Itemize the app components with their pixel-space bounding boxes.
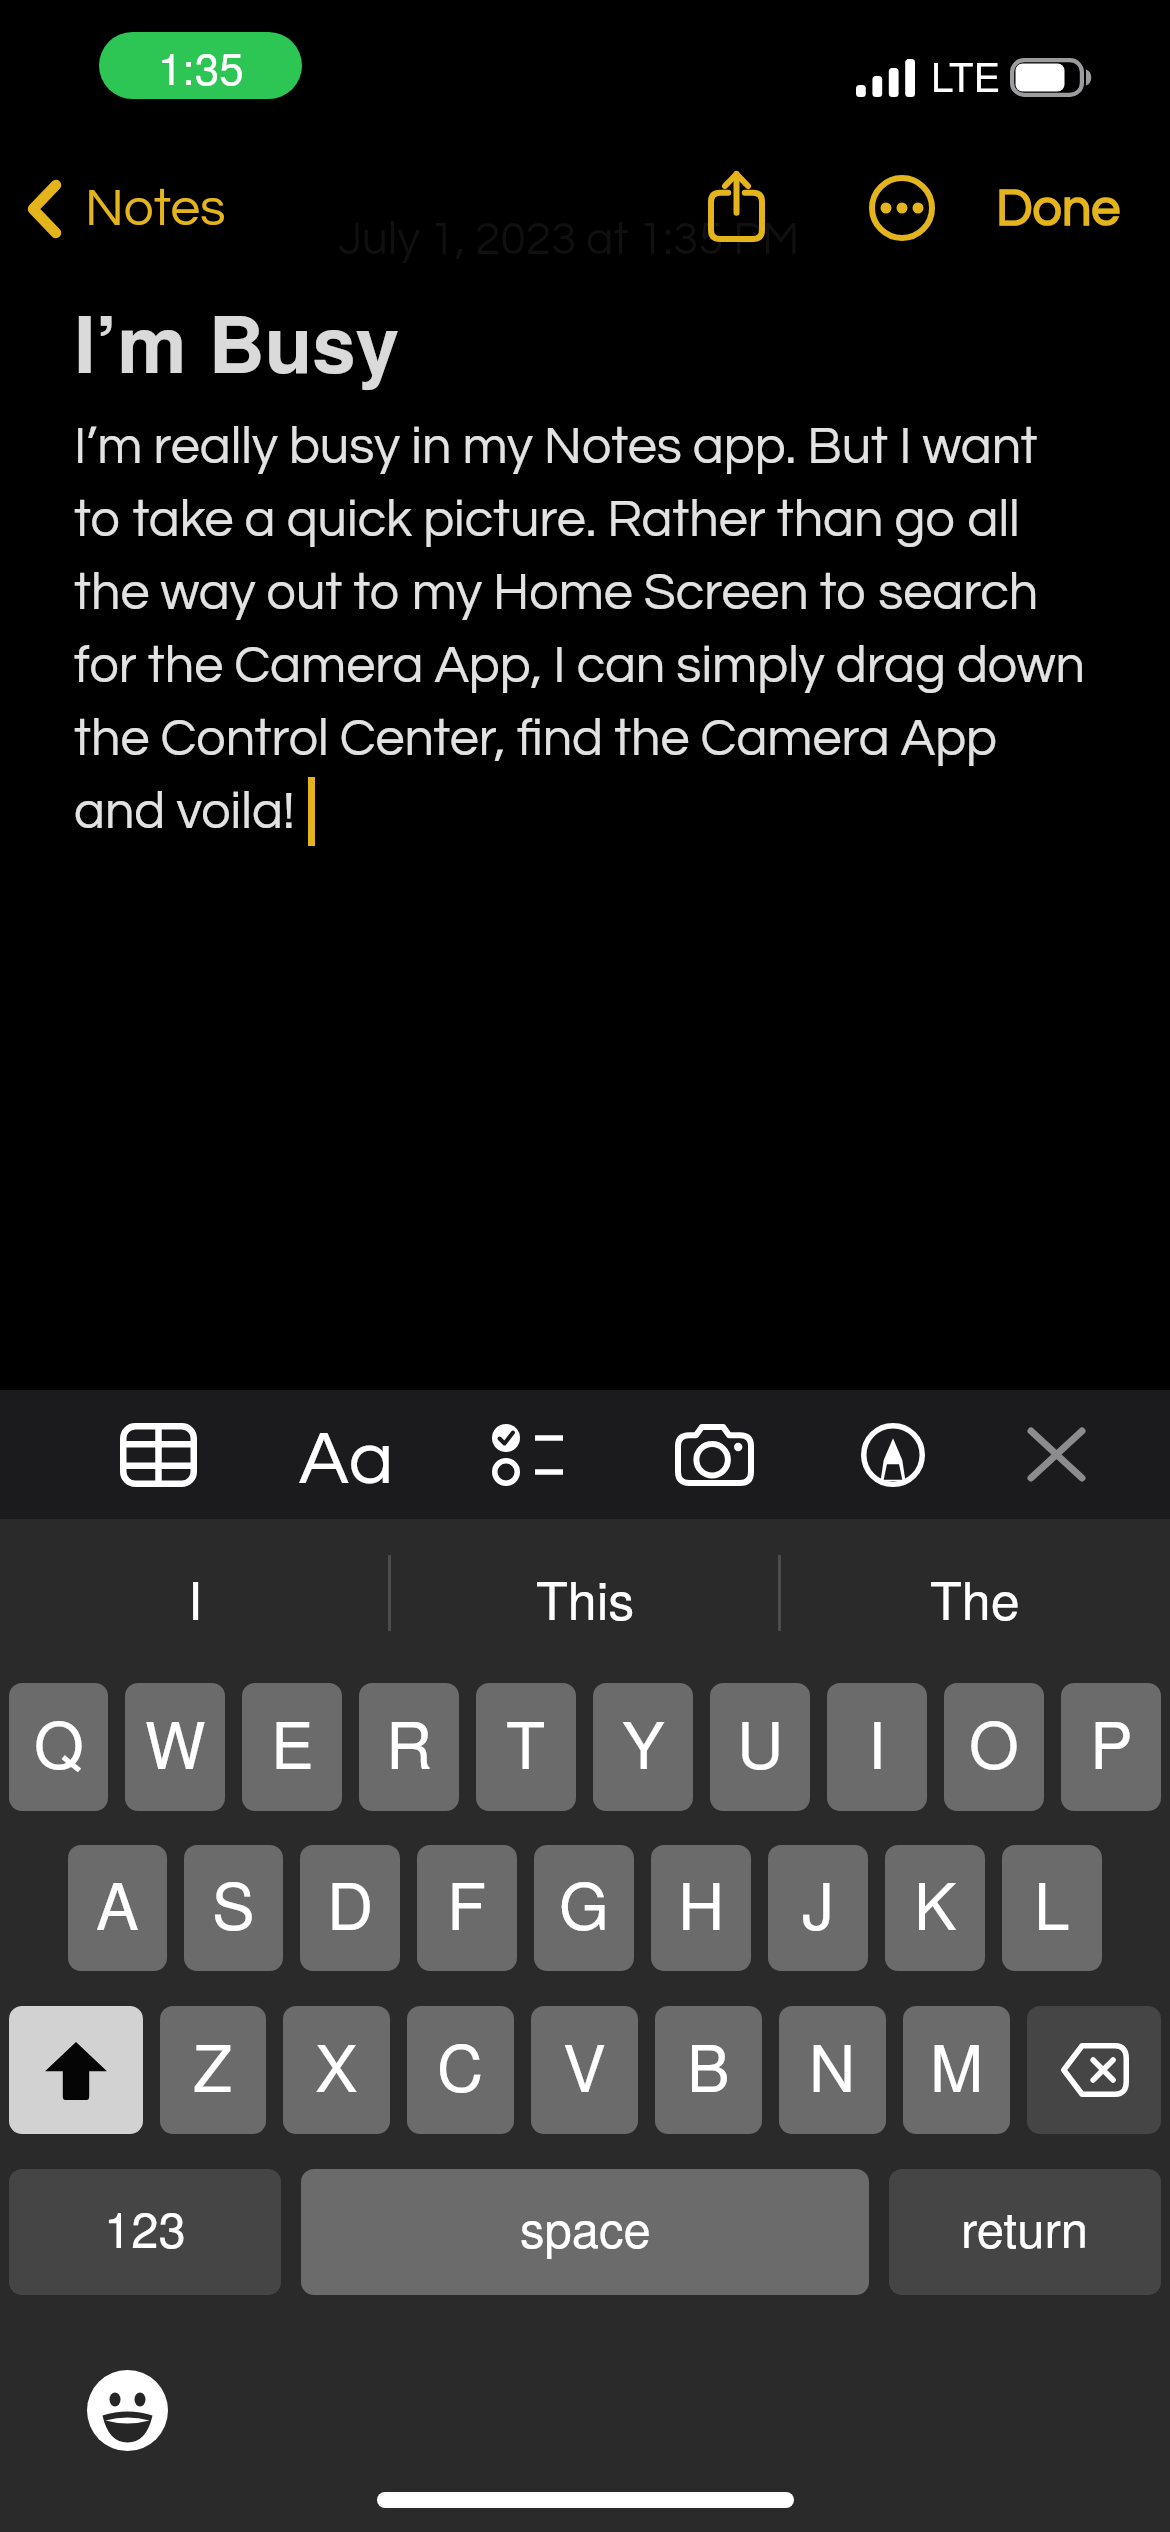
button[interactable]: J [768, 1845, 868, 1971]
button[interactable]: Done [984, 159, 1133, 259]
staticText: W [145, 1696, 206, 1788]
staticText: space [520, 2192, 651, 2262]
button[interactable]: Shift [9, 2006, 143, 2134]
staticText: I [868, 1696, 886, 1788]
button[interactable]: W [125, 1683, 225, 1811]
button[interactable]: I [827, 1683, 927, 1811]
button[interactable]: H [651, 1845, 751, 1971]
button[interactable]: F [417, 1845, 517, 1971]
button[interactable]: The [780, 1515, 1170, 1679]
button[interactable]: O [944, 1683, 1044, 1811]
button[interactable]: Q [9, 1683, 108, 1811]
staticText: M [930, 2019, 984, 2111]
staticText: The [930, 1560, 1020, 1634]
button[interactable]: Z [160, 2006, 266, 2134]
button[interactable]: E [242, 1683, 342, 1811]
button[interactable]: M [903, 2006, 1010, 2134]
staticText: D [327, 1857, 374, 1949]
staticText: 123 [104, 2192, 186, 2262]
button[interactable]: space [301, 2169, 869, 2295]
staticText: I’m really busy in my Notes app. But I w… [74, 405, 1085, 843]
staticText: return [961, 2192, 1089, 2262]
staticText: Aa [299, 1421, 394, 1498]
button[interactable]: P [1061, 1683, 1161, 1811]
button[interactable]: Share [686, 155, 786, 255]
staticText: LTE [931, 46, 1001, 103]
button[interactable]: return [889, 2169, 1161, 2295]
button[interactable]: V [531, 2006, 638, 2134]
staticText: T [506, 1696, 546, 1788]
button[interactable]: Y [593, 1683, 693, 1811]
button[interactable]: 123 [9, 2169, 281, 2295]
button[interactable]: Markup [836, 1390, 950, 1519]
staticText: X [315, 2019, 358, 2111]
button[interactable]: U [710, 1683, 810, 1811]
staticText: S [212, 1857, 255, 1949]
button[interactable]: This [390, 1515, 780, 1679]
button[interactable]: Emoji keyboard [77, 2360, 177, 2460]
staticText: R [386, 1696, 433, 1788]
staticText: G [559, 1857, 609, 1949]
button[interactable]: Backspace [1027, 2006, 1161, 2134]
staticText: A [96, 1857, 139, 1949]
button[interactable]: X [283, 2006, 390, 2134]
button[interactable]: More options [852, 158, 952, 258]
button[interactable]: T [476, 1683, 576, 1811]
button[interactable]: N [779, 2006, 886, 2134]
staticText: N [809, 2019, 856, 2111]
staticText: C [437, 2019, 484, 2111]
button[interactable]: R [359, 1683, 459, 1811]
staticText: 1:35 [158, 34, 244, 97]
button[interactable]: L [1002, 1845, 1102, 1971]
staticText: I [188, 1560, 203, 1634]
button[interactable]: I [0, 1515, 390, 1679]
staticText: P [1090, 1696, 1133, 1788]
button[interactable]: B [655, 2006, 762, 2134]
staticText: Notes [85, 182, 226, 237]
button[interactable]: Checklist [471, 1390, 585, 1519]
staticText: July 1, 2023 at 1:35 PM [338, 216, 800, 263]
staticText: Done [996, 182, 1121, 236]
button[interactable]: Notes [18, 169, 234, 249]
staticText: Z [193, 2019, 233, 2111]
staticText: F [447, 1857, 487, 1949]
button[interactable]: C [407, 2006, 514, 2134]
staticText: U [737, 1696, 784, 1788]
button[interactable]: Table [101, 1390, 215, 1519]
button[interactable]: Camera [657, 1390, 771, 1519]
staticText: Y [622, 1696, 665, 1788]
button[interactable]: D [300, 1845, 400, 1971]
button[interactable]: G [534, 1845, 634, 1971]
staticText: Q [34, 1696, 84, 1788]
staticText: I’m Busy [74, 285, 400, 397]
staticText: V [563, 2019, 606, 2111]
staticText: B [687, 2019, 730, 2111]
staticText: O [969, 1696, 1019, 1788]
button[interactable]: S [184, 1845, 283, 1971]
button[interactable]: Text format [289, 1390, 403, 1519]
staticText: H [678, 1857, 725, 1949]
staticText: K [914, 1857, 957, 1949]
button[interactable]: K [885, 1845, 985, 1971]
button[interactable]: A [68, 1845, 167, 1971]
staticText: L [1034, 1857, 1070, 1949]
staticText: E [271, 1696, 314, 1788]
staticText: J [802, 1857, 834, 1949]
button[interactable]: Close keyboard [999, 1390, 1113, 1519]
staticText: This [536, 1560, 635, 1634]
